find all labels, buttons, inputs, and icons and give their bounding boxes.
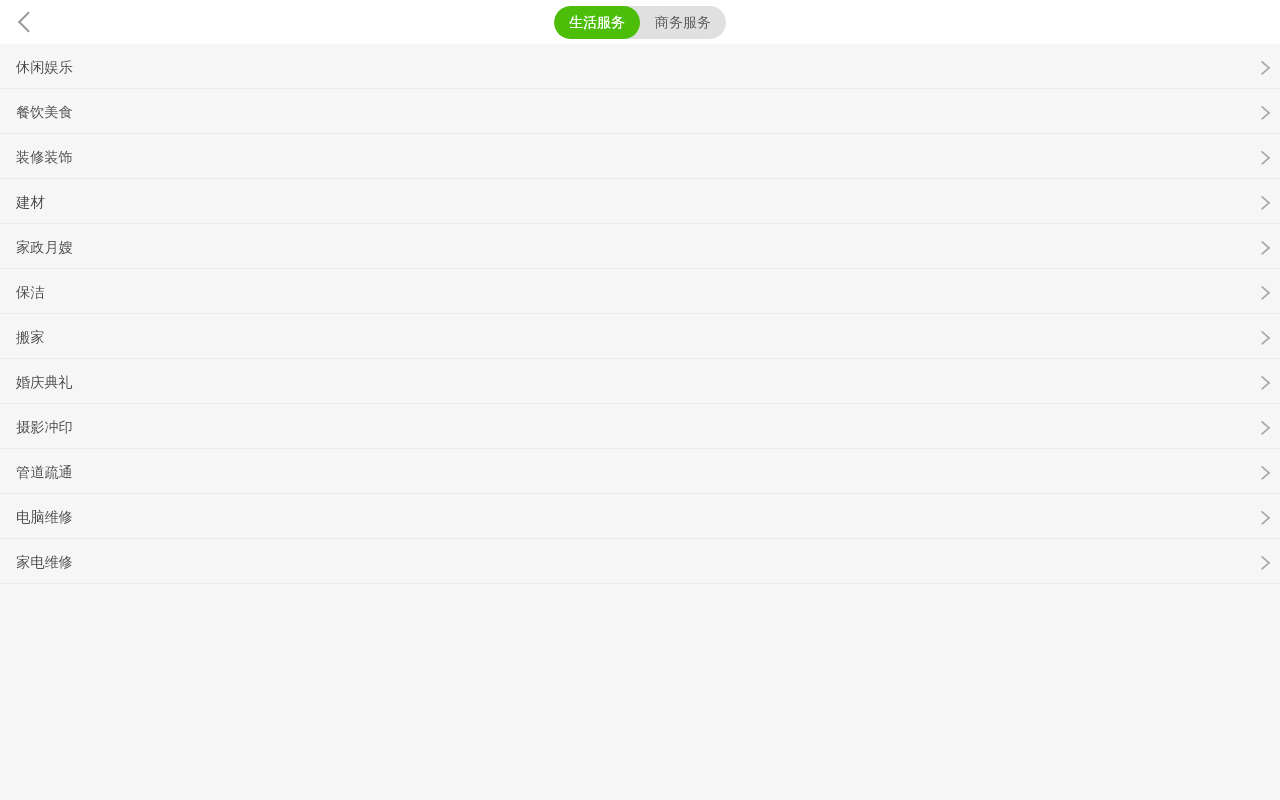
staticText: 家电维修: [16, 553, 73, 571]
staticText: 婚庆典礼: [16, 373, 73, 391]
button[interactable]: 家电维修: [0, 539, 1280, 584]
staticText: 搬家: [16, 328, 45, 346]
button[interactable]: 管道疏通: [0, 449, 1280, 494]
staticText: 餐饮美食: [16, 103, 73, 121]
button[interactable]: 保洁: [0, 269, 1280, 314]
button[interactable]: 休闲娱乐: [0, 44, 1280, 89]
button[interactable]: 装修装饰: [0, 134, 1280, 179]
button[interactable]: 电脑维修: [0, 494, 1280, 539]
button[interactable]: 婚庆典礼: [0, 359, 1280, 404]
button[interactable]: 搬家: [0, 314, 1280, 359]
button[interactable]: 家政月嫂: [0, 224, 1280, 269]
staticText: 摄影冲印: [16, 418, 73, 436]
button[interactable]: 建材: [0, 179, 1280, 224]
staticText: 生活服务: [569, 14, 625, 32]
button[interactable]: 餐饮美食: [0, 89, 1280, 134]
button[interactable]: 生活服务: [554, 6, 640, 39]
staticText: 商务服务: [655, 14, 711, 32]
staticText: 管道疏通: [16, 463, 73, 481]
staticText: 建材: [16, 193, 45, 211]
staticText: 家政月嫂: [16, 238, 73, 256]
button[interactable]: 商务服务: [640, 6, 726, 39]
staticText: 休闲娱乐: [16, 58, 73, 76]
staticText: 电脑维修: [16, 508, 73, 526]
button[interactable]: Back: [0, 0, 44, 44]
button[interactable]: 摄影冲印: [0, 404, 1280, 449]
staticText: 装修装饰: [16, 148, 73, 166]
staticText: 保洁: [16, 283, 45, 301]
